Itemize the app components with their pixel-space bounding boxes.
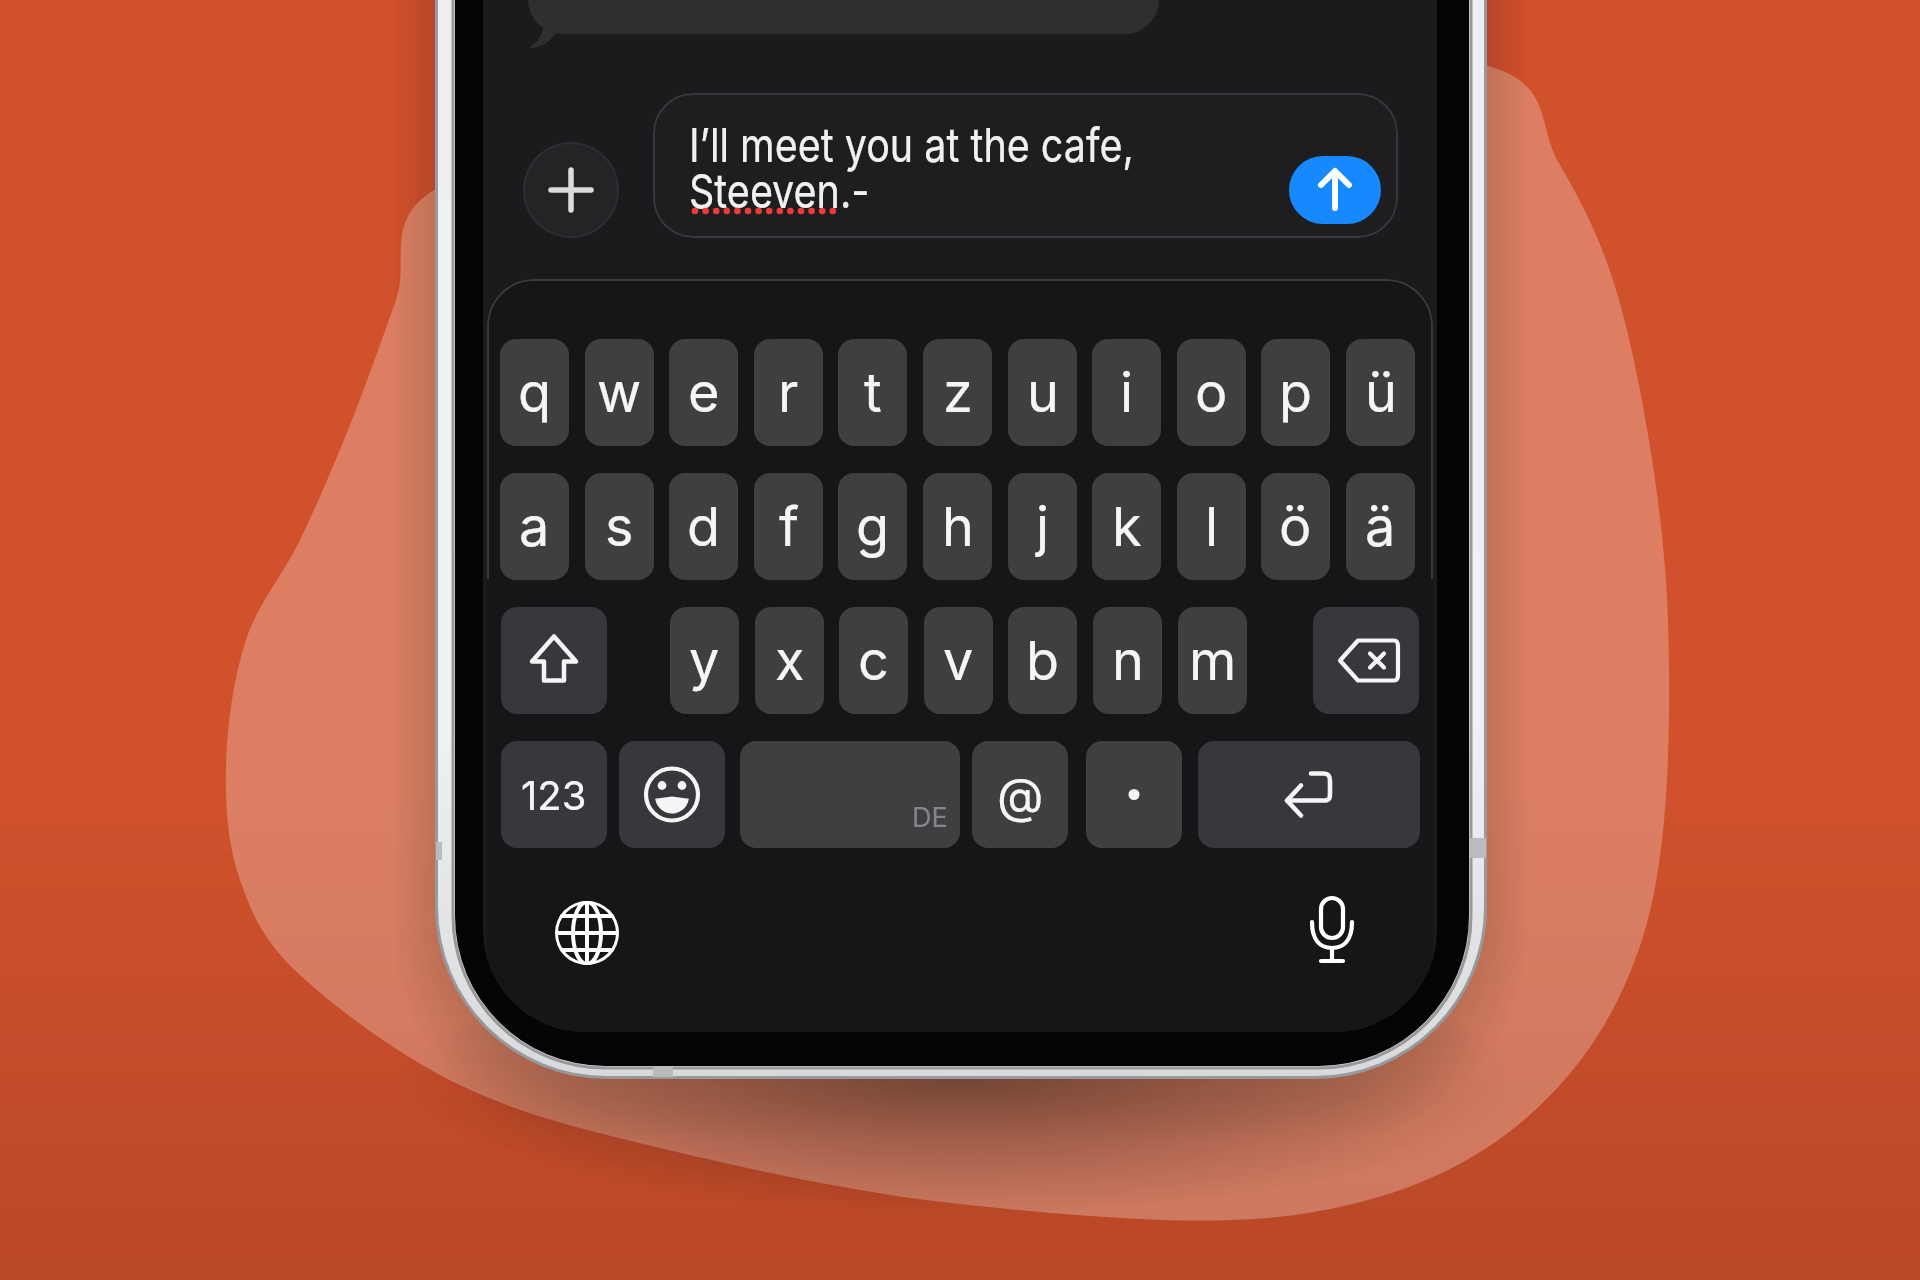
staticText: u: [1027, 360, 1059, 425]
button[interactable]: h: [923, 473, 992, 580]
staticText: x: [775, 628, 805, 693]
staticText: n: [1112, 628, 1144, 693]
button[interactable]: q: [500, 339, 569, 446]
staticText: ä: [1365, 494, 1396, 559]
button[interactable]: i: [1092, 339, 1161, 446]
staticText: w: [597, 360, 642, 425]
staticText: j: [1036, 494, 1050, 559]
staticText: o: [1195, 360, 1228, 425]
staticText: @: [997, 766, 1044, 824]
button[interactable]: [619, 741, 725, 848]
button[interactable]: a: [500, 473, 569, 580]
button[interactable]: d: [669, 473, 738, 580]
button[interactable]: n: [1093, 607, 1162, 714]
button[interactable]: [1289, 156, 1381, 224]
button[interactable]: p: [1261, 339, 1330, 446]
button[interactable]: [501, 607, 607, 714]
button[interactable]: y: [670, 607, 739, 714]
button[interactable]: ä: [1346, 473, 1415, 580]
button[interactable]: z: [923, 339, 992, 446]
button[interactable]: @: [972, 741, 1068, 848]
button[interactable]: g: [838, 473, 907, 580]
button[interactable]: b: [1008, 607, 1077, 714]
button[interactable]: [1300, 896, 1364, 968]
staticText: ü: [1365, 360, 1397, 425]
button[interactable]: f: [754, 473, 823, 580]
button[interactable]: [1198, 741, 1420, 848]
button[interactable]: I’ll meet you at the cafe,: [653, 93, 1398, 238]
button[interactable]: ü: [1346, 339, 1415, 446]
staticText: I’ll meet you at the cafe,: [689, 116, 1134, 173]
button[interactable]: [1313, 607, 1419, 714]
staticText: v: [943, 628, 974, 693]
staticText: s: [605, 494, 634, 559]
staticText: Steeven.-: [689, 162, 870, 219]
staticText: r: [778, 360, 799, 425]
staticText: z: [943, 360, 973, 425]
button[interactable]: s: [585, 473, 654, 580]
staticText: i: [1120, 360, 1134, 425]
button[interactable]: j: [1008, 473, 1077, 580]
staticText: a: [519, 494, 550, 559]
staticText: g: [856, 494, 890, 559]
staticText: e: [688, 360, 720, 425]
staticText: h: [942, 494, 974, 559]
button[interactable]: v: [924, 607, 993, 714]
button[interactable]: o: [1177, 339, 1246, 446]
button[interactable]: [1086, 741, 1182, 848]
staticText: 123: [521, 771, 587, 819]
staticText: f: [779, 494, 799, 559]
staticText: DE: [912, 801, 948, 834]
staticText: m: [1189, 628, 1237, 693]
button[interactable]: r: [754, 339, 823, 446]
staticText: ö: [1279, 494, 1312, 559]
button[interactable]: w: [585, 339, 654, 446]
button[interactable]: k: [1092, 473, 1161, 580]
button[interactable]: t: [838, 339, 907, 446]
button[interactable]: DE: [740, 741, 960, 848]
button[interactable]: m: [1178, 607, 1247, 714]
button[interactable]: [523, 142, 619, 238]
staticText: c: [858, 628, 889, 693]
button[interactable]: e: [669, 339, 738, 446]
staticText: b: [1026, 628, 1060, 693]
button[interactable]: 123: [501, 741, 607, 848]
staticText: y: [689, 628, 720, 693]
button[interactable]: c: [839, 607, 908, 714]
button[interactable]: ö: [1261, 473, 1330, 580]
button[interactable]: x: [755, 607, 824, 714]
staticText: t: [864, 360, 882, 425]
staticText: d: [687, 494, 721, 559]
staticText: q: [518, 360, 552, 425]
button[interactable]: l: [1177, 473, 1246, 580]
staticText: l: [1205, 494, 1219, 559]
staticText: p: [1279, 360, 1313, 425]
button[interactable]: [555, 901, 619, 965]
button[interactable]: u: [1008, 339, 1077, 446]
staticText: k: [1112, 494, 1142, 559]
